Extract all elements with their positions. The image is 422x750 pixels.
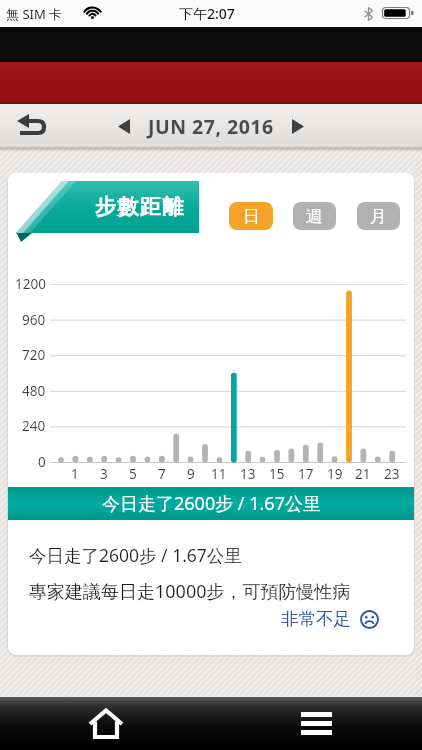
staticText: 720 [22,346,46,364]
staticText: 21 [355,465,371,482]
button[interactable]: 週 [293,202,336,230]
button[interactable] [10,108,54,144]
staticText: 日 [243,206,260,227]
staticText: 月 [370,206,387,227]
staticText: 5 [129,465,137,482]
button[interactable] [0,697,211,750]
staticText: 今日走了2600步 / 1.67公里 [29,543,242,565]
staticText: 今日走了2600步 / 1.67公里 [102,491,321,516]
button[interactable]: 今日走了2600步 / 1.67公里 [8,487,414,520]
button[interactable] [211,697,422,750]
button[interactable] [109,108,139,144]
staticText: 11 [211,465,227,482]
staticText: 7 [158,465,166,482]
staticText: 960 [22,311,46,329]
staticText: 480 [22,382,46,400]
staticText: 非常不足 [281,608,351,630]
button[interactable]: 非常不足 [281,608,379,630]
staticText: 下午2:07 [179,4,235,23]
staticText: 週 [306,206,323,227]
staticText: 1200 [15,275,46,293]
staticText: 專家建議每日走10000步，可預防慢性病 [29,579,351,601]
button[interactable] [283,108,313,144]
staticText: 23 [384,465,400,482]
staticText: 15 [269,465,285,482]
staticText: 0 [38,453,46,471]
staticText: 19 [327,465,343,482]
staticText: 9 [187,465,195,482]
staticText: 無 SIM 卡 [6,5,63,23]
staticText: JUN 27, 2016 [148,113,274,140]
staticText: 步數距離 [94,194,184,220]
staticText: 1 [71,465,79,482]
button[interactable]: 日 [229,202,273,230]
button[interactable]: 步數距離 [70,189,208,225]
staticText: 13 [240,465,256,482]
staticText: 3 [100,465,108,482]
staticText: 17 [298,465,314,482]
button[interactable]: 月 [357,202,400,230]
staticText: 240 [22,417,46,435]
